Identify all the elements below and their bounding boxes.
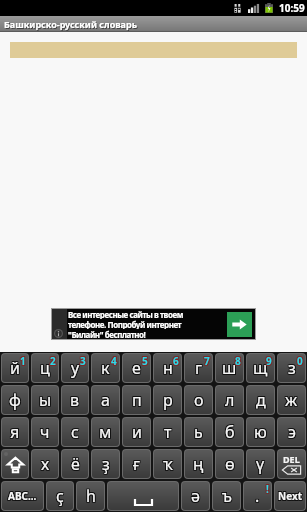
staticText: 3: [81, 355, 87, 369]
button[interactable]: с: [62, 418, 88, 446]
button[interactable]: Ad info: [52, 309, 255, 339]
staticText: ә: [191, 485, 201, 507]
staticText: 8: [236, 354, 242, 368]
staticText: м: [99, 420, 112, 442]
button[interactable]: ғ: [123, 450, 150, 478]
staticText: 9: [267, 354, 273, 367]
button[interactable]: .: [244, 482, 271, 510]
staticText: в: [70, 390, 80, 412]
button[interactable]: о: [185, 386, 212, 414]
staticText: а: [102, 389, 111, 411]
button[interactable]: и: [123, 418, 150, 446]
button[interactable]: й: [2, 354, 28, 382]
button[interactable]: Delete: [278, 450, 305, 478]
staticText: .: [254, 486, 259, 508]
staticText: !: [265, 483, 268, 497]
staticText: т: [164, 421, 172, 443]
staticText: х: [42, 452, 51, 474]
button[interactable]: Next: [275, 482, 305, 510]
button[interactable]: ъ: [213, 482, 240, 510]
staticText: 5: [141, 354, 147, 367]
staticText: с: [71, 421, 79, 443]
button[interactable]: ш: [216, 354, 243, 382]
staticText: ё: [70, 452, 79, 474]
button[interactable]: ҫ: [47, 482, 73, 510]
staticText: й: [11, 357, 21, 379]
button[interactable]: ь: [185, 418, 212, 446]
button[interactable]: ф: [2, 386, 28, 414]
button[interactable]: л: [216, 386, 243, 414]
staticText: к: [101, 358, 110, 380]
button[interactable]: ң: [185, 450, 212, 478]
staticText: ҫ: [56, 484, 64, 506]
staticText: н: [162, 356, 172, 378]
button[interactable]: ж: [278, 386, 305, 414]
staticText: ч: [41, 420, 51, 442]
button[interactable]: н: [154, 354, 181, 382]
button[interactable]: д: [247, 386, 274, 414]
button[interactable]: т: [154, 418, 181, 446]
button[interactable]: ю: [247, 418, 274, 446]
staticText: 10:59: [280, 2, 306, 16]
button[interactable]: ҙ: [92, 450, 119, 478]
staticText: ө: [224, 452, 234, 474]
staticText: Next: [277, 489, 302, 503]
staticText: я: [9, 421, 19, 443]
button[interactable]: п: [123, 386, 150, 414]
button[interactable]: р: [154, 386, 181, 414]
staticText: ө: [225, 454, 235, 476]
staticText: ъ: [223, 484, 233, 506]
staticText: я: [11, 421, 21, 443]
staticText: я: [10, 422, 20, 444]
staticText: л: [225, 388, 235, 410]
button[interactable]: х: [32, 450, 58, 478]
staticText: д: [255, 389, 265, 411]
button[interactable]: ё: [62, 450, 88, 478]
staticText: 5: [141, 355, 147, 369]
staticText: .: [256, 485, 261, 507]
staticText: ф: [9, 388, 21, 410]
button[interactable]: ч: [32, 418, 58, 446]
button[interactable]: я: [2, 418, 28, 446]
staticText: һ: [87, 484, 97, 506]
button[interactable]: ABC...: [2, 482, 43, 510]
button[interactable]: е: [123, 354, 150, 382]
staticText: х: [40, 453, 49, 475]
staticText: һ: [86, 485, 96, 507]
button[interactable]: ә: [182, 482, 209, 510]
button[interactable]: у: [62, 354, 88, 382]
button[interactable]: ц: [32, 354, 58, 382]
button[interactable]: б: [216, 418, 243, 446]
staticText: ю: [254, 421, 267, 443]
button[interactable]: в: [62, 386, 88, 414]
staticText: 7: [205, 354, 211, 368]
staticText: ү: [255, 453, 264, 475]
staticText: 3: [79, 354, 85, 367]
staticText: 1: [20, 354, 26, 368]
button[interactable]: ү: [247, 450, 274, 478]
staticText: р: [162, 388, 172, 410]
staticText: 9: [266, 354, 272, 367]
staticText: ж: [286, 389, 299, 411]
button[interactable]: г: [185, 354, 212, 382]
staticText: у: [72, 356, 81, 378]
button[interactable]: ҡ: [154, 450, 181, 478]
staticText: в: [70, 389, 80, 411]
button[interactable]: з: [278, 354, 305, 382]
button[interactable]: м: [92, 418, 119, 446]
button[interactable]: э: [278, 418, 305, 446]
button[interactable]: ы: [32, 386, 58, 414]
button[interactable]: Shift: [2, 450, 28, 478]
staticText: о: [194, 389, 204, 411]
button[interactable]: щ: [247, 354, 274, 382]
button[interactable]: ө: [216, 450, 243, 478]
button[interactable]: Open ad: [227, 312, 252, 337]
staticText: а: [102, 388, 111, 410]
staticText: 4: [112, 355, 118, 369]
staticText: п: [131, 389, 141, 411]
button[interactable]: Space: [108, 482, 178, 510]
button[interactable]: к: [92, 354, 119, 382]
button[interactable]: һ: [77, 482, 104, 510]
button[interactable]: а: [92, 386, 119, 414]
